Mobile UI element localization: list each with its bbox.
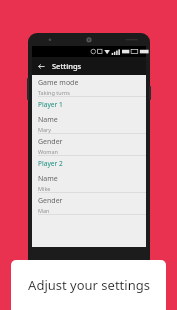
staticText: Game mode: [38, 78, 79, 88]
staticText: Mary: [38, 126, 52, 133]
staticText: Mike: [38, 185, 51, 192]
staticText: Taking turns: [38, 89, 70, 96]
staticText: Name: [38, 115, 58, 125]
button[interactable]: Gender: [32, 134, 146, 155]
staticText: Gender: [38, 196, 63, 206]
staticText: Adjust your settings: [28, 276, 150, 294]
button[interactable]: Player 1: [32, 97, 146, 112]
staticText: Woman: [38, 148, 58, 155]
button[interactable]: Gender: [32, 193, 146, 214]
button[interactable]: Back: [36, 61, 47, 72]
staticText: Player 2: [38, 159, 63, 168]
button[interactable]: Player 2: [32, 156, 146, 171]
staticText: Gender: [38, 137, 63, 147]
button[interactable]: Name: [32, 112, 146, 133]
button[interactable]: Name: [32, 171, 146, 192]
staticText: Player 1: [38, 100, 63, 109]
staticText: Settings: [52, 61, 82, 71]
button[interactable]: Game mode: [32, 75, 146, 96]
staticText: Man: [38, 207, 50, 214]
staticText: Name: [38, 174, 58, 184]
